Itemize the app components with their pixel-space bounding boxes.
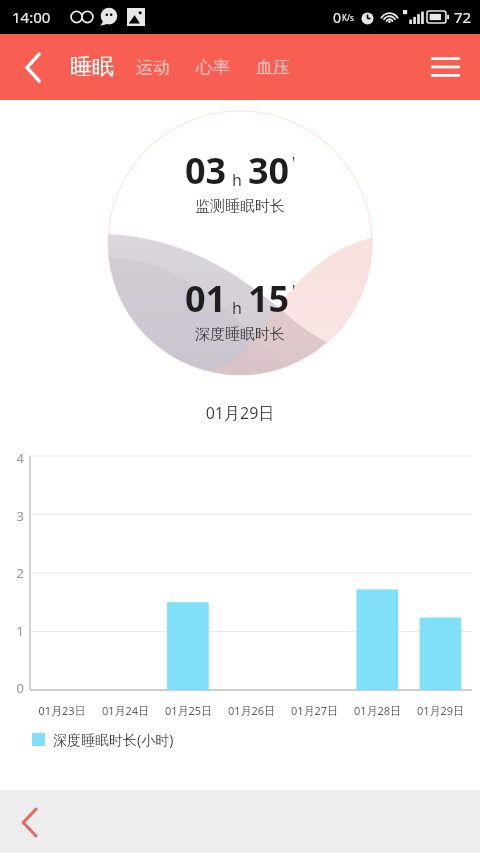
staticText: 深度睡眠时长 (195, 325, 285, 344)
staticText: ' (292, 151, 296, 171)
staticText: 睡眠 (70, 53, 114, 81)
button[interactable]: Back (12, 46, 54, 88)
staticText: 15 (248, 274, 290, 323)
staticText: 14:00 (12, 7, 51, 27)
staticText: h (232, 169, 242, 191)
button[interactable]: Menu (422, 44, 468, 90)
staticText: ' (292, 279, 296, 299)
staticText: 01月26日 (220, 703, 283, 718)
staticText: 01月23日 (30, 703, 94, 718)
staticText: 0 (333, 8, 342, 27)
staticText: 血压 (256, 57, 290, 78)
button[interactable]: Back (6, 798, 54, 846)
button[interactable]: 血压 (254, 57, 292, 78)
staticText: 01 (185, 274, 227, 323)
staticText: 01月25日 (157, 703, 220, 718)
staticText: 0 (0, 679, 24, 697)
staticText: 30 (248, 146, 290, 195)
staticText: K/s (342, 12, 354, 23)
staticText: 01月29日 (409, 703, 472, 718)
staticText: 4 (0, 449, 24, 467)
staticText: 01月27日 (283, 703, 346, 718)
staticText: 2 (0, 564, 24, 582)
staticText: 深度睡眠时长(小时) (53, 730, 174, 749)
button[interactable]: 心率 (194, 57, 232, 78)
staticText: 1 (0, 622, 24, 640)
staticText: 01月29日 (0, 402, 480, 424)
staticText: 01月24日 (94, 703, 157, 718)
staticText: 运动 (136, 57, 170, 78)
staticText: 01月28日 (346, 703, 409, 718)
button[interactable]: 睡眠 (68, 53, 116, 81)
staticText: 监测睡眠时长 (195, 197, 285, 216)
staticText: 心率 (196, 57, 230, 78)
staticText: h (232, 297, 242, 319)
staticText: 3 (0, 507, 24, 525)
button[interactable]: 运动 (134, 57, 172, 78)
staticText: 72 (454, 7, 472, 27)
staticText: 03 (185, 146, 227, 195)
